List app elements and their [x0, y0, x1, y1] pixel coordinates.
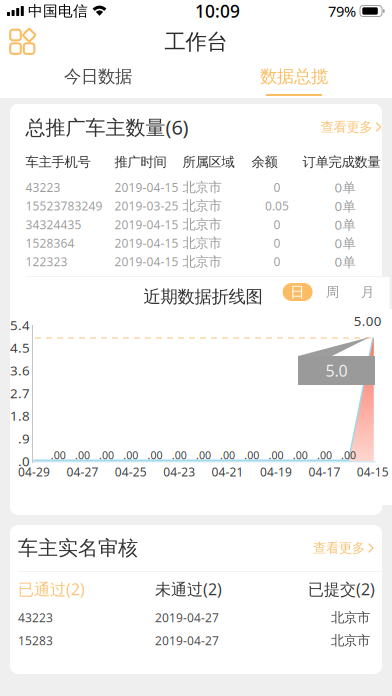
staticText: 04-17 — [308, 464, 340, 480]
staticText: 0单 — [335, 197, 356, 215]
staticText: 04-27 — [66, 464, 98, 480]
staticText: 5.4 — [10, 316, 30, 334]
staticText: 10:09 — [195, 0, 240, 22]
staticText: 04-21 — [212, 464, 244, 480]
staticText: 0单 — [335, 234, 356, 252]
staticText: 所属区域 — [183, 154, 235, 170]
staticText: 余额 — [252, 154, 278, 170]
staticText: 15283 — [18, 632, 53, 648]
button[interactable]: 已提交(2) — [308, 572, 375, 606]
staticText: 未通过(2) — [155, 578, 222, 600]
staticText: 已提交(2) — [308, 578, 375, 600]
staticText: 2019-03-25 — [115, 198, 179, 214]
staticText: 0单 — [335, 178, 356, 196]
staticText: 34324435 — [26, 216, 82, 232]
staticText: 43223 — [18, 609, 53, 625]
staticText: 122323 — [26, 254, 68, 270]
staticText: 0.05 — [265, 198, 289, 214]
staticText: 北京市 — [183, 216, 222, 233]
staticText: 1.8 — [10, 407, 30, 424]
staticText: 北京市 — [183, 179, 222, 195]
staticText: 04-23 — [163, 464, 195, 480]
staticText: .00 — [99, 448, 114, 462]
staticText: 查看更多 — [313, 540, 365, 556]
staticText: .00 — [244, 448, 259, 462]
staticText: 2019-04-15 — [115, 216, 179, 232]
button[interactable]: Workspace apps — [0, 22, 52, 62]
staticText: 43223 — [26, 179, 61, 195]
staticText: 车主实名审核 — [18, 536, 138, 560]
staticText: 订单完成数量 — [303, 154, 381, 170]
button[interactable]: 今日数据 — [0, 62, 196, 98]
staticText: 04-29 — [18, 464, 50, 480]
staticText: 车主手机号 — [26, 154, 91, 170]
staticText: .00 — [268, 448, 283, 462]
staticText: 2019-04-27 — [155, 609, 219, 625]
staticText: 周 — [326, 284, 339, 300]
button[interactable]: 已通过(2) — [18, 572, 155, 606]
staticText: 日 — [290, 283, 305, 301]
staticText: .00 — [75, 448, 90, 462]
button[interactable]: 未通过(2) — [155, 572, 308, 606]
staticText: 北京市 — [331, 609, 370, 626]
staticText: 79% — [328, 1, 356, 21]
staticText: .00 — [317, 448, 332, 462]
staticText: 2019-04-15 — [115, 179, 179, 195]
staticText: 0单 — [335, 216, 356, 233]
staticText: .0 — [18, 452, 30, 470]
staticText: 3.6 — [10, 361, 30, 379]
staticText: 2019-04-15 — [115, 235, 179, 251]
staticText: 北京市 — [331, 632, 370, 649]
button[interactable]: 月 — [355, 283, 381, 301]
button[interactable]: 周 — [320, 283, 346, 301]
button[interactable]: 查看更多 — [313, 111, 382, 143]
staticText: 0 — [274, 179, 281, 195]
staticText: .00 — [196, 448, 211, 462]
button[interactable]: 数据总揽 — [196, 62, 392, 98]
staticText: .00 — [293, 448, 308, 462]
staticText: 4.5 — [10, 339, 30, 356]
staticText: 5.0 — [325, 360, 347, 381]
staticText: 2.7 — [10, 384, 30, 402]
staticText: .00 — [123, 448, 138, 462]
staticText: 中国电信 — [28, 2, 88, 20]
staticText: .00 — [147, 448, 162, 462]
staticText: 今日数据 — [64, 66, 132, 87]
staticText: 2019-04-27 — [155, 632, 219, 648]
staticText: 0 — [274, 216, 281, 232]
staticText: 04-15 — [357, 464, 389, 480]
staticText: 04-25 — [115, 464, 147, 480]
staticText: 北京市 — [183, 198, 222, 214]
staticText: 月 — [361, 284, 374, 300]
staticText: 推广时间 — [115, 154, 167, 170]
staticText: 近期数据折线图 — [144, 286, 263, 307]
staticText: 0单 — [335, 253, 356, 270]
staticText: .00 — [341, 448, 356, 462]
staticText: 北京市 — [183, 253, 222, 270]
staticText: 已通过(2) — [18, 578, 85, 600]
staticText: .00 — [51, 448, 66, 462]
staticText: 工作台 — [164, 29, 227, 55]
staticText: 总推广车主数量(6) — [26, 114, 189, 140]
staticText: .00 — [172, 448, 187, 462]
button[interactable]: 日 — [283, 283, 313, 301]
staticText: 0 — [274, 254, 281, 270]
staticText: 5.00 — [354, 312, 382, 330]
staticText: .00 — [220, 448, 235, 462]
staticText: 04-19 — [260, 464, 292, 480]
staticText: 15523783249 — [26, 198, 103, 214]
staticText: 1528364 — [26, 235, 75, 251]
button[interactable]: 查看更多 — [305, 532, 374, 564]
staticText: .9 — [18, 429, 30, 447]
staticText: 北京市 — [183, 235, 222, 251]
staticText: 0 — [274, 235, 281, 251]
staticText: 数据总揽 — [260, 66, 328, 87]
staticText: 2019-04-15 — [115, 254, 179, 270]
staticText: 查看更多 — [321, 119, 373, 135]
